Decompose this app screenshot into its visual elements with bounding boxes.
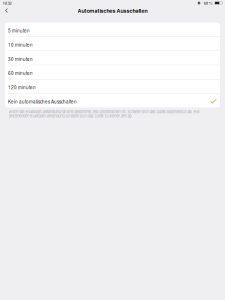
button[interactable]: 120 minuten [5,79,220,93]
staticText: bestehender Bluetooth-Verbindung schalte… [8,113,132,118]
staticText: 120 minuten [8,84,36,91]
button[interactable]: 10 minuten [5,37,220,51]
staticText: Automatisches Ausschalten [77,7,147,14]
staticText: 30 minuten [8,56,33,62]
button[interactable]: 60 minuten [5,65,220,79]
staticText: 68 % [204,0,213,6]
button[interactable]: 30 minuten [5,51,220,65]
staticText: Wenn die Bluetooth-Verbindung für eine b… [8,109,199,114]
staticText: 5 minuten [8,27,30,34]
staticText: 60 minuten [8,70,33,76]
staticText: 10 minuten [8,41,33,48]
staticText: Kein automatisches Ausschalten [8,98,77,105]
button[interactable]: Back [0,6,12,15]
button[interactable]: Kein automatisches Ausschalten [5,94,220,107]
button[interactable]: 5 minuten [5,23,220,36]
staticText: 19:32 [2,0,11,6]
